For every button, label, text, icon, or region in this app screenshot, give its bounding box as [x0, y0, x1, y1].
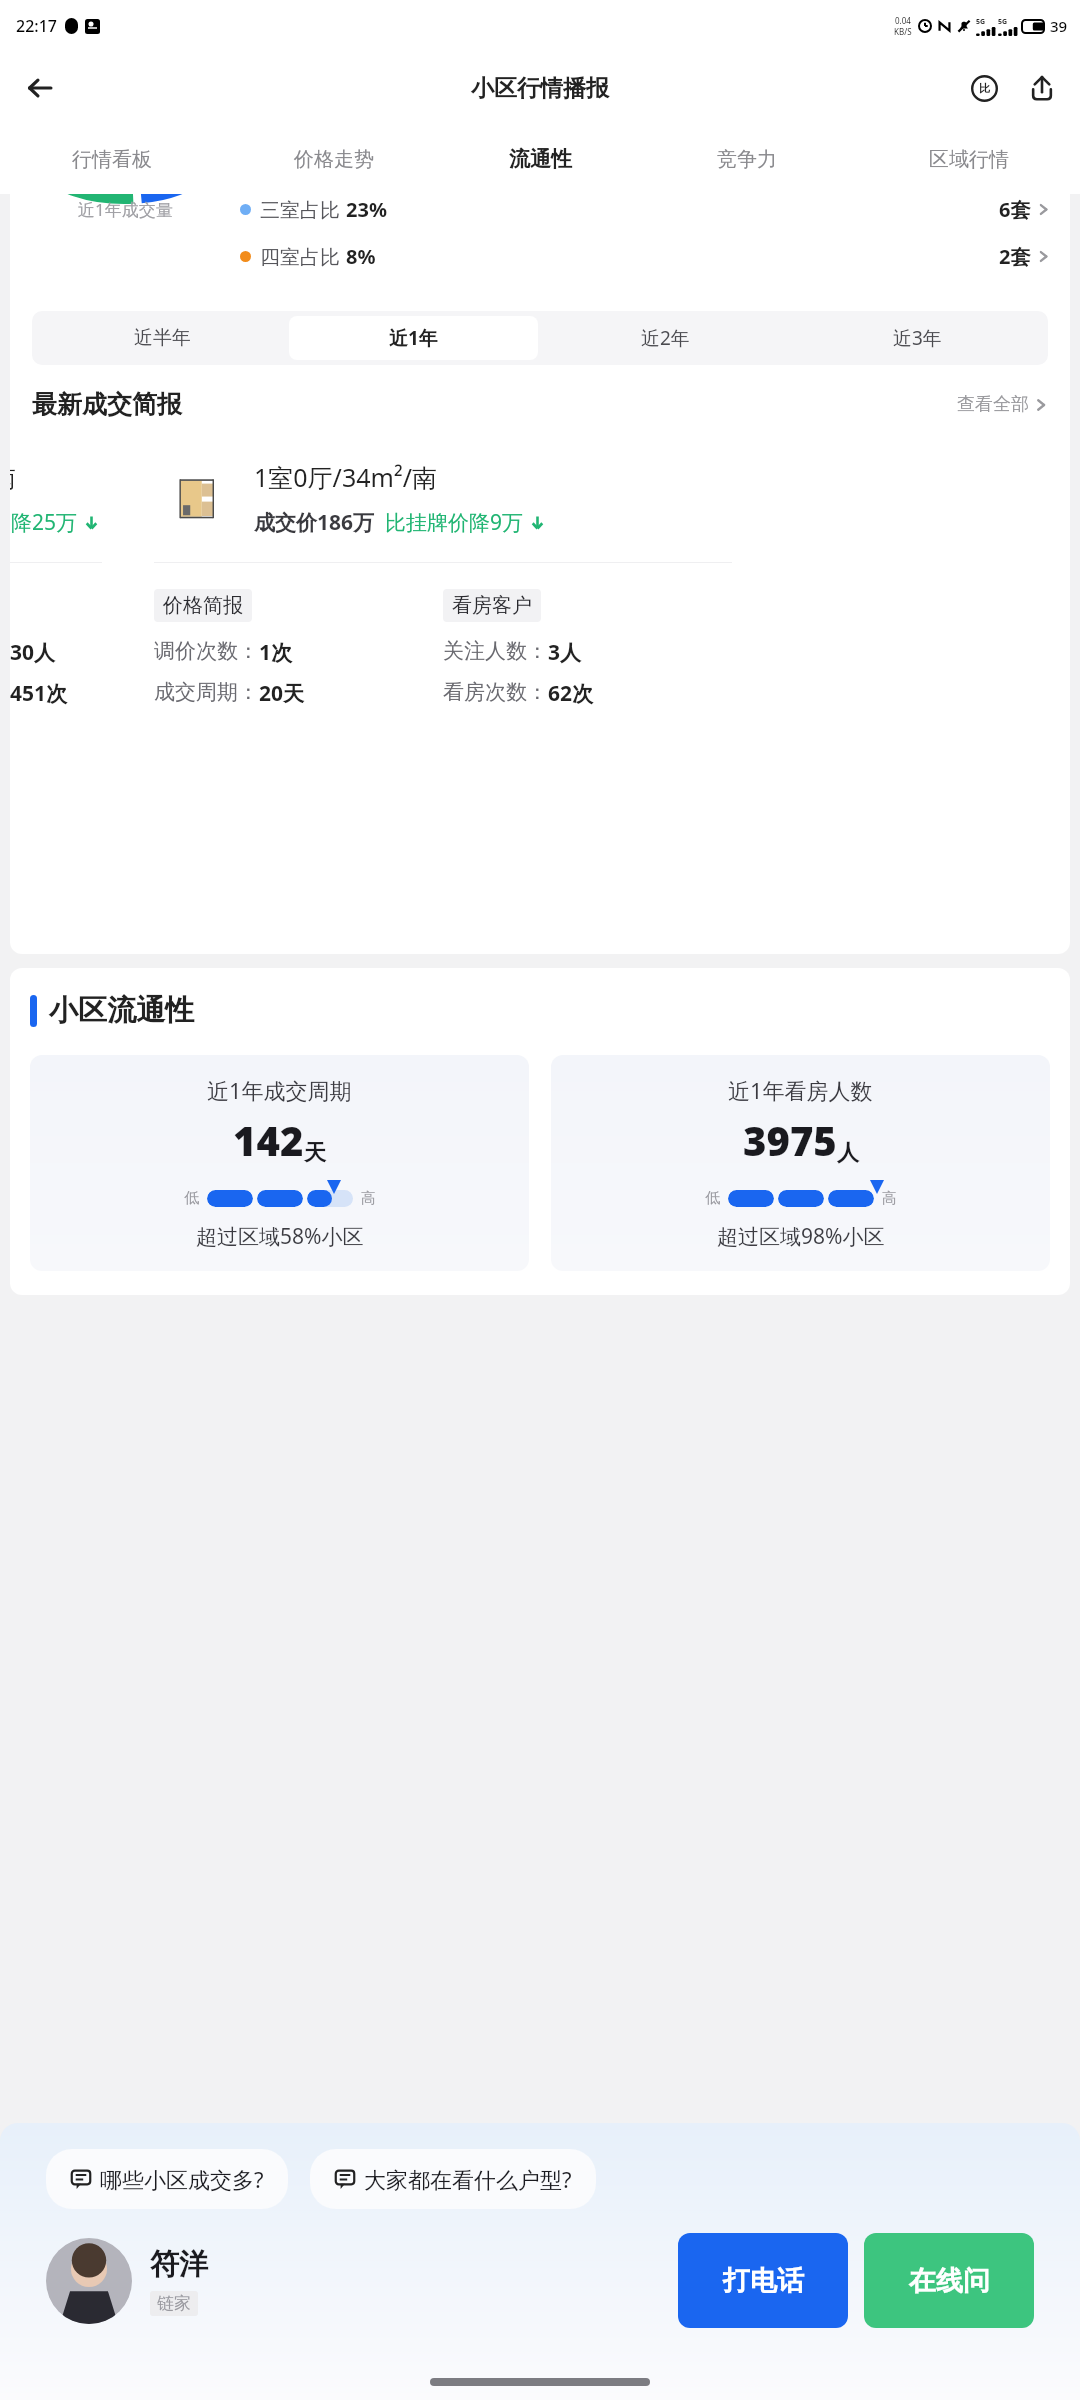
staticText: 价格走势 [294, 147, 374, 172]
staticText: 打电话 [723, 2264, 804, 2298]
staticText: 大家都在看什么户型? [364, 2164, 572, 2194]
staticText: 符洋 [150, 2246, 208, 2283]
staticText: 高 [361, 1189, 376, 1208]
button[interactable]: 行情看板 [0, 124, 223, 194]
button[interactable]: 四室占比 [240, 243, 1050, 270]
staticText: 在线问 [909, 2264, 990, 2298]
staticText: 查看全部 [957, 393, 1029, 416]
staticText: 行情看板 [72, 147, 152, 172]
staticText: 39 [1050, 16, 1068, 36]
staticText: 近2年 [641, 325, 690, 351]
staticText: 竞争力 [717, 147, 777, 172]
button[interactable]: 价格走势 [223, 124, 445, 194]
staticText: 30人 [10, 638, 56, 667]
button[interactable]: 在线问 [864, 2233, 1034, 2328]
button[interactable]: 近3年 [792, 316, 1042, 360]
staticText: 62次 [548, 679, 594, 708]
staticText: 超过区域58%小区 [196, 1222, 364, 1251]
button[interactable]: 大家都在看什么户型? [310, 2149, 596, 2209]
staticText: 1室1厅/48m²/东南 [10, 460, 16, 494]
staticText: 近1年成交周期 [207, 1075, 352, 1105]
staticText: 低 [705, 1189, 720, 1208]
staticText: 看房次数： [443, 679, 548, 705]
staticText: 区域行情 [929, 147, 1009, 172]
button[interactable]: 哪些小区成交多? [46, 2149, 288, 2209]
button[interactable]: 近1年成交周期 [30, 1055, 529, 1271]
staticText: KB/S [894, 26, 912, 37]
staticText: 近1年成交量 [78, 198, 173, 221]
staticText: 3人 [548, 638, 582, 667]
button[interactable]: 三室占比 [240, 196, 1050, 223]
staticText: 20天 [259, 679, 305, 708]
button[interactable]: 流通性 [445, 124, 636, 194]
staticText: 看房客户 [452, 593, 532, 618]
button[interactable]: 打电话 [678, 2233, 848, 2328]
staticText: 四室占比 [260, 243, 346, 270]
staticText: 0.04 [895, 15, 911, 26]
staticText: 高 [882, 1189, 897, 1208]
button[interactable]: 近1年看房人数 [551, 1055, 1050, 1271]
button[interactable]: 近半年 [38, 316, 287, 360]
button[interactable]: 区域行情 [858, 124, 1080, 194]
staticText: 人 [837, 1139, 859, 1167]
button[interactable]: Back [14, 62, 66, 114]
button[interactable]: Share [1018, 64, 1066, 112]
staticText: 比挂牌价降9万 [385, 508, 524, 537]
staticText: 142 [233, 1113, 304, 1167]
staticText: 链家 [157, 2293, 191, 2314]
staticText: 23% [346, 196, 387, 223]
staticText: 近1年 [389, 325, 438, 351]
button[interactable]: 竞争力 [636, 124, 858, 194]
staticText: 天 [304, 1139, 326, 1167]
staticText: 小区流通性 [49, 992, 194, 1029]
staticText: 近1年看房人数 [728, 1075, 873, 1105]
staticText: 最新成交简报 [32, 389, 182, 420]
staticText: 5G [998, 17, 1008, 27]
staticText: 1室0厅/34m²/南 [254, 460, 437, 494]
staticText: 流通性 [509, 146, 572, 172]
staticText: 近半年 [134, 326, 191, 350]
staticText: 小区行情播报 [471, 74, 609, 103]
button[interactable]: 近2年 [540, 316, 790, 360]
button[interactable]: 1室1厅/48m²/东南 [10, 436, 120, 934]
staticText: 22:17 [16, 15, 57, 37]
staticText: 三室占比 [260, 196, 346, 223]
staticText: 2套 [999, 243, 1031, 270]
staticText: 比 [979, 81, 990, 95]
staticText: 调价次数： [154, 638, 259, 664]
staticText: 1次 [259, 638, 293, 667]
staticText: 6套 [999, 196, 1031, 223]
staticText: 关注人数： [443, 638, 548, 664]
button[interactable]: 近1年 [289, 316, 538, 360]
staticText: 比挂牌价降25万 [10, 508, 78, 537]
staticText: 哪些小区成交多? [100, 2164, 264, 2194]
staticText: 低 [184, 1189, 199, 1208]
staticText: 价格简报 [163, 593, 243, 618]
button[interactable]: 查看全部 [957, 393, 1048, 416]
button[interactable]: 1室0厅/34m²/南 [136, 436, 750, 934]
staticText: 3975 [743, 1113, 837, 1167]
staticText: 8% [346, 243, 376, 270]
staticText: 成交周期： [154, 679, 259, 705]
button[interactable]: Compare [960, 64, 1008, 112]
staticText: 近3年 [893, 325, 942, 351]
staticText: 5G [976, 17, 986, 27]
staticText: 451次 [10, 679, 68, 708]
staticText: 成交价186万 [254, 508, 375, 537]
staticText: 超过区域98%小区 [717, 1222, 885, 1251]
